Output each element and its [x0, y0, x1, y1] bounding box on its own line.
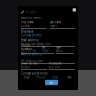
staticText: Contact preference [21, 72, 48, 75]
staticText: jordan.reyes@mail.com [21, 42, 50, 46]
staticText: Save [49, 81, 54, 84]
staticText: 204 [42, 49, 48, 53]
staticText: 48 Harbour Lane [21, 59, 44, 63]
staticText: Bristol [21, 65, 30, 69]
staticText: Mailing address [21, 52, 42, 56]
staticText: Ext. [42, 45, 46, 49]
button[interactable]: Close [73, 8, 76, 12]
staticText: Phone [36, 76, 46, 79]
staticText: Last name [49, 20, 61, 24]
staticText: Email address [21, 38, 38, 42]
staticText: Display as [21, 30, 33, 33]
staticText: Contact details [21, 33, 41, 37]
staticText: Type [56, 45, 62, 49]
staticText: Phone number [21, 44, 32, 51]
staticText: Postcode [49, 62, 62, 65]
staticText: 555 0134 [21, 49, 36, 53]
staticText: Town or city [21, 62, 37, 65]
staticText: BS1 4TR [49, 65, 60, 69]
staticText: First name [21, 20, 34, 24]
staticText: Work [56, 49, 62, 53]
staticText: Email [24, 76, 30, 79]
staticText: Reyes [49, 24, 56, 28]
staticText: Profile [26, 9, 37, 14]
staticText: SMS [67, 76, 71, 79]
staticText: Account owner [21, 16, 42, 19]
staticText: Jordan [21, 24, 30, 28]
staticText: Post [52, 76, 58, 79]
button[interactable]: Save [45, 80, 58, 85]
